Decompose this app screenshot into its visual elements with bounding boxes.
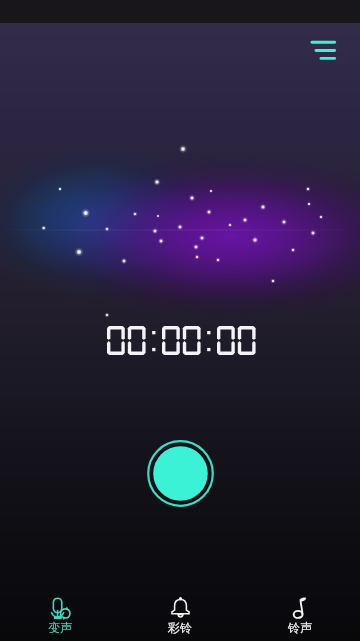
button[interactable]: 铃声 xyxy=(240,593,360,635)
button[interactable]: 彩铃 xyxy=(120,593,240,635)
button[interactable]: Record xyxy=(147,440,215,508)
button[interactable]: 变声 xyxy=(0,593,120,635)
staticText: 变声 xyxy=(48,620,72,635)
staticText: 铃声 xyxy=(288,620,312,635)
staticText: 彩铃 xyxy=(168,620,192,635)
button[interactable]: Menu xyxy=(302,31,342,67)
